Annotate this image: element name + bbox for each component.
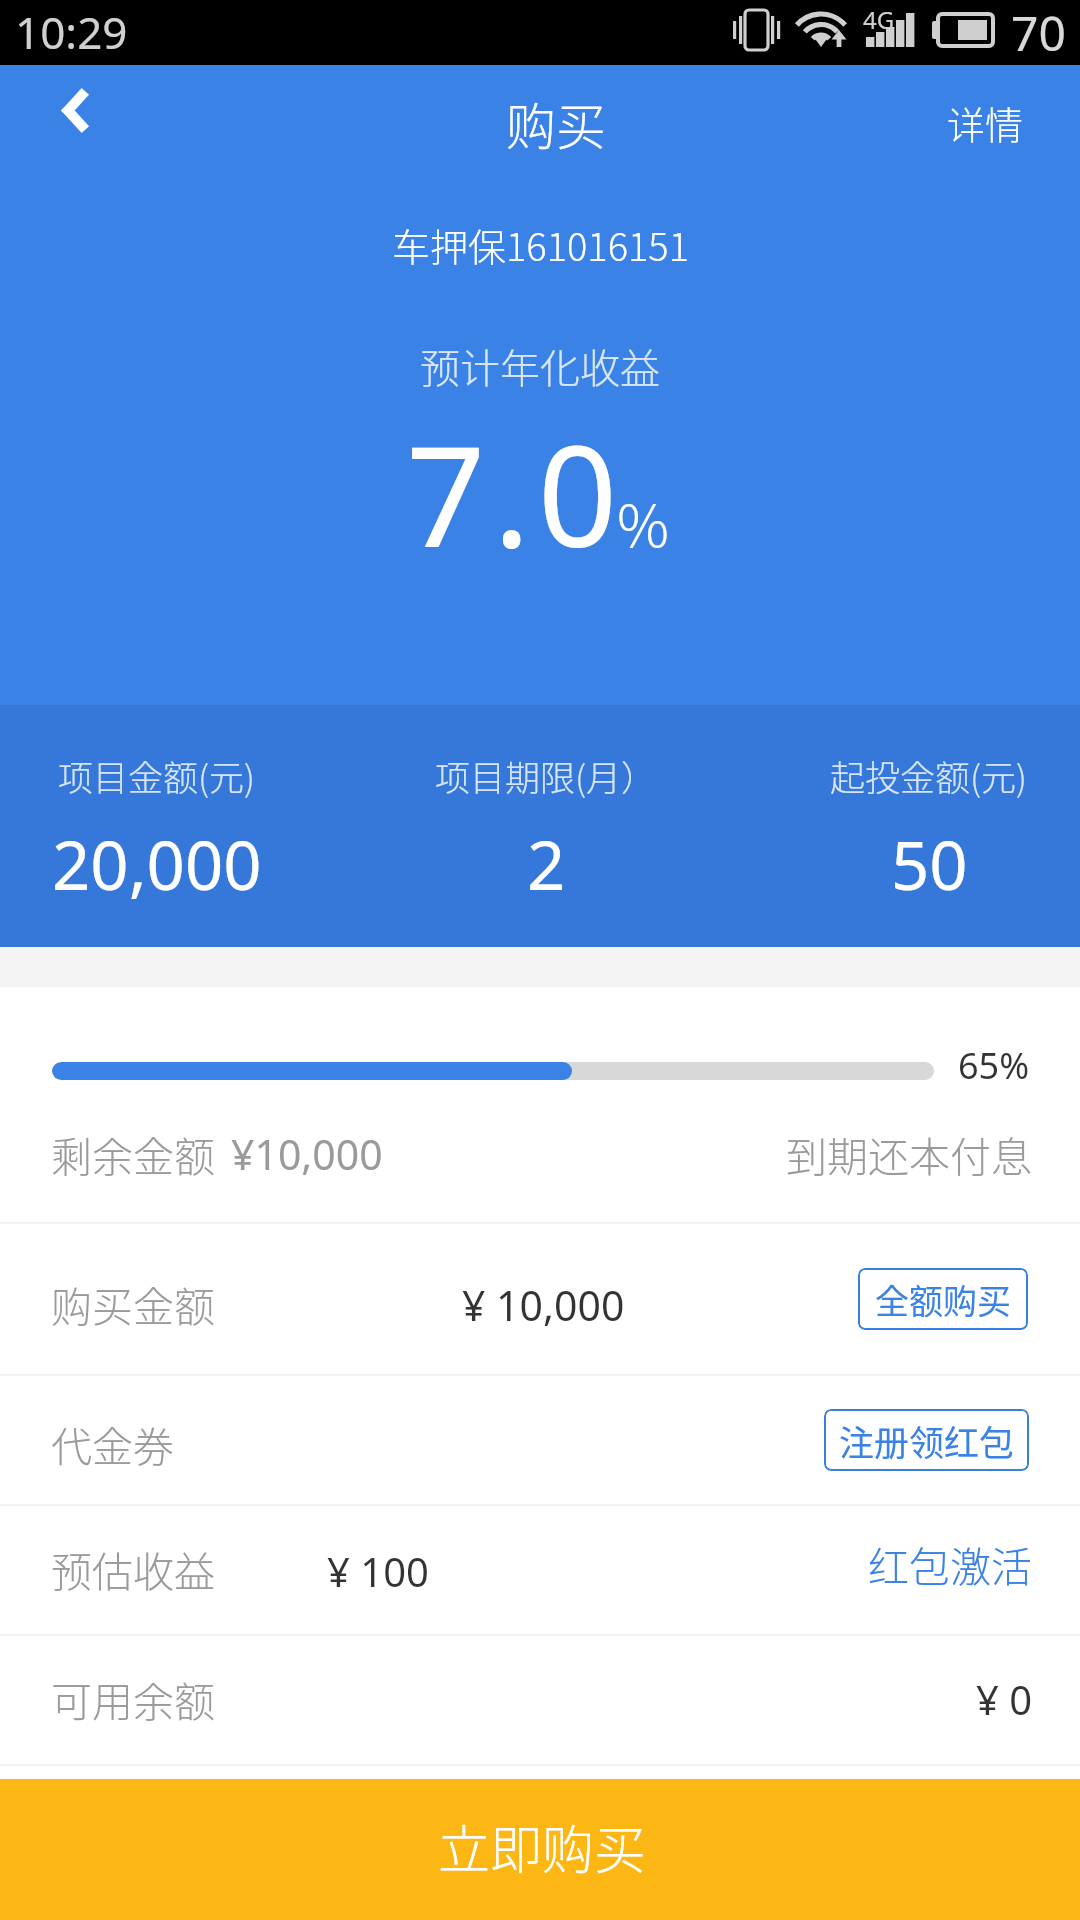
staticText: 可用余额	[51, 1669, 215, 1728]
staticText: 70	[1011, 0, 1066, 65]
staticText: 起投金额(元)	[830, 750, 1028, 801]
staticText: 50	[891, 818, 968, 909]
staticText: 剩余金额	[51, 1124, 215, 1183]
staticText: 预估收益	[51, 1539, 215, 1598]
staticText: 20,000	[52, 818, 262, 909]
button[interactable]: 全额购买	[858, 1268, 1028, 1330]
staticText: ¥ 100	[327, 1544, 429, 1598]
staticText: %	[617, 480, 670, 564]
staticText: 到期还本付息	[786, 1124, 1032, 1183]
staticText: 代金券	[51, 1414, 174, 1473]
staticText: 项目期限(月）	[435, 750, 657, 801]
staticText: 7.0	[406, 398, 625, 587]
staticText: 全额购买	[875, 1275, 1011, 1324]
staticText: 立即购买	[438, 1809, 647, 1884]
staticText: 注册领红包	[839, 1415, 1015, 1466]
staticText: 预计年化收益	[420, 337, 660, 395]
staticText: 详情	[947, 95, 1024, 150]
staticText: 车押保161016151	[392, 217, 689, 272]
staticText: ¥10,000	[231, 1126, 383, 1182]
staticText: ¥ 10,000	[462, 1277, 625, 1333]
button[interactable]: 详情	[925, 77, 1046, 168]
staticText: 购买金额	[51, 1274, 215, 1333]
staticText: 65%	[958, 1041, 1030, 1090]
button[interactable]: 红包激活	[868, 1514, 1080, 1613]
button[interactable]: 立即购买	[0, 1779, 1080, 1920]
button[interactable]: Back	[20, 55, 130, 165]
staticText: 2	[527, 818, 566, 909]
staticText: 项目金额(元)	[58, 750, 256, 801]
staticText: 购买	[506, 87, 606, 159]
staticText: 10:29	[15, 2, 128, 62]
button[interactable]: 注册领红包	[824, 1409, 1029, 1471]
staticText: 红包激活	[868, 1534, 1032, 1593]
staticText: 4G	[863, 3, 895, 36]
staticText: ¥ 0	[976, 1672, 1033, 1726]
